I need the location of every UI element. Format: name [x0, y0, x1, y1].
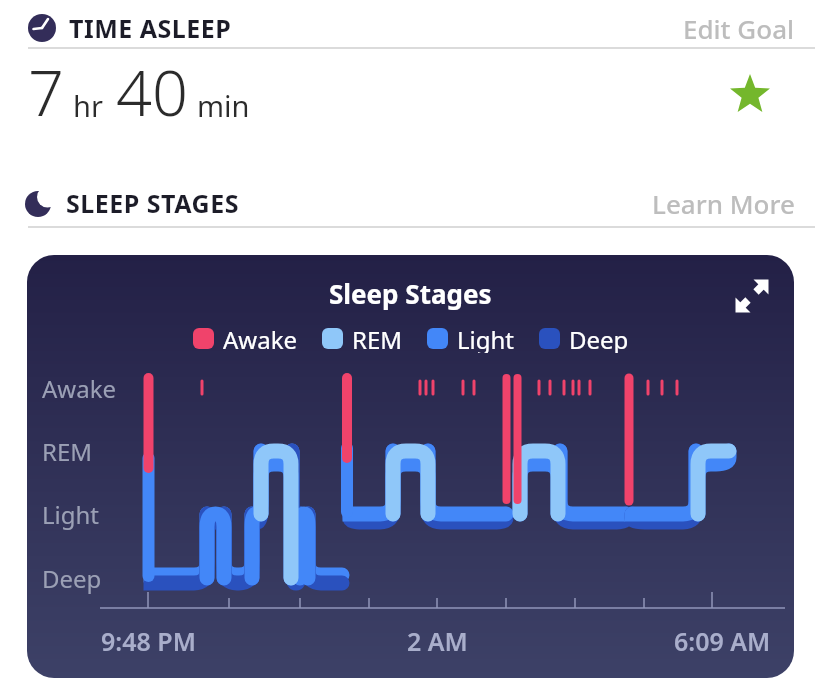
- staticText: SLEEP STAGES: [66, 186, 239, 220]
- staticText: Deep: [569, 323, 629, 353]
- staticText: hr: [73, 86, 103, 125]
- staticText: Edit Goal: [683, 11, 795, 46]
- staticText: min: [197, 86, 250, 125]
- staticText: 2 AM: [407, 624, 468, 654]
- button[interactable]: [730, 75, 770, 115]
- staticText: Awake: [42, 372, 117, 404]
- staticText: Light: [42, 498, 100, 530]
- button[interactable]: Edit Goal: [683, 11, 795, 46]
- staticText: Awake: [223, 323, 298, 353]
- staticText: Light: [457, 323, 515, 353]
- button[interactable]: [732, 276, 772, 316]
- staticText: 7: [28, 49, 64, 135]
- staticText: REM: [42, 435, 93, 467]
- staticText: Deep: [42, 562, 102, 594]
- button[interactable]: Learn More: [652, 186, 795, 220]
- button[interactable]: [27, 255, 794, 678]
- staticText: 6:09 AM: [674, 624, 771, 654]
- staticText: TIME ASLEEP: [69, 11, 232, 45]
- staticText: 40: [116, 49, 188, 135]
- staticText: REM: [352, 323, 403, 353]
- staticText: 9:48 PM: [101, 624, 196, 654]
- staticText: Sleep Stages: [329, 276, 492, 311]
- staticText: Learn More: [652, 186, 795, 220]
